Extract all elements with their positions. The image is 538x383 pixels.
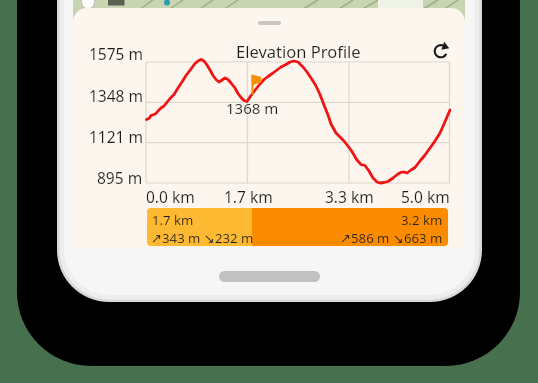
- button[interactable]: [258, 21, 281, 25]
- button[interactable]: [430, 41, 452, 61]
- staticText: 3.2 km: [401, 211, 443, 227]
- staticText: 1575 m: [89, 43, 143, 61]
- staticText: 3.3 km: [325, 186, 374, 204]
- staticText: 1121 m: [89, 126, 143, 144]
- button[interactable]: [252, 208, 448, 246]
- staticText: 1.7 km: [152, 211, 194, 227]
- staticText: Elevation Profile: [236, 40, 361, 58]
- staticText: ↗586 m ↘663 m: [340, 229, 443, 245]
- staticText: 895 m: [97, 167, 143, 185]
- staticText: 0.0 km: [146, 186, 195, 204]
- staticText: ↗343 m ↘232 m: [151, 229, 254, 245]
- staticText: 5.0 km: [401, 186, 450, 204]
- button[interactable]: [219, 271, 320, 282]
- staticText: 1368 m: [226, 98, 279, 116]
- button[interactable]: [147, 208, 253, 246]
- staticText: 1348 m: [89, 85, 143, 103]
- staticText: 1.7 km: [224, 186, 273, 204]
